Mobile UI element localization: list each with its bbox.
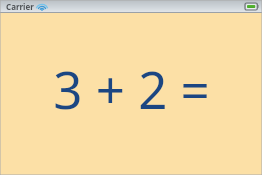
staticText: 3 + 2 = [53, 54, 210, 123]
staticText: Carrier [6, 1, 34, 12]
button[interactable]: 3 + 2 = [0, 54, 262, 123]
other: Battery full [245, 3, 259, 10]
other: Wi-Fi signal [37, 3, 47, 11]
